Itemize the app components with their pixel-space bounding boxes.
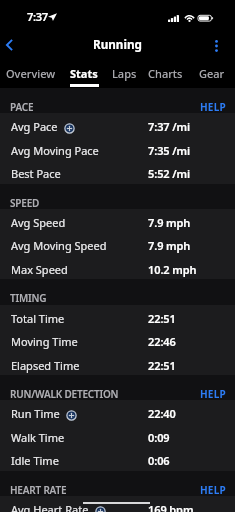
staticText: Running bbox=[93, 36, 142, 52]
staticText: 22:40 bbox=[148, 406, 176, 421]
staticText: Idle Time bbox=[11, 453, 59, 468]
staticText: 7.9 mph bbox=[148, 215, 191, 230]
button[interactable]: Run Time bbox=[0, 400, 235, 425]
button[interactable]: Avg Moving Pace bbox=[0, 137, 235, 162]
staticText: Avg Moving Pace bbox=[11, 143, 99, 158]
button[interactable]: Stats bbox=[58, 66, 110, 87]
staticText: 22:51 bbox=[148, 358, 176, 373]
staticText: 10.2 mph bbox=[148, 262, 197, 277]
staticText: RUN/WALK DETECTION bbox=[10, 387, 119, 401]
button[interactable]: Moving Time bbox=[0, 328, 235, 353]
button[interactable]: More options bbox=[206, 28, 228, 54]
button[interactable]: Max Speed bbox=[0, 256, 235, 281]
button[interactable]: Elapsed Time bbox=[0, 352, 235, 377]
staticText: 7.9 mph bbox=[148, 238, 191, 253]
staticText: 22:46 bbox=[148, 334, 176, 349]
staticText: Elapsed Time bbox=[11, 358, 80, 373]
button[interactable]: HELP bbox=[200, 100, 226, 114]
staticText: 0:06 bbox=[148, 453, 170, 468]
staticText: Best Pace bbox=[11, 166, 61, 181]
staticText: Laps bbox=[112, 66, 137, 81]
button[interactable]: Overview bbox=[5, 66, 57, 87]
button[interactable]: Avg Heart Rate bbox=[0, 496, 235, 512]
staticText: 169 bpm bbox=[148, 502, 194, 512]
button[interactable]: Best Pace bbox=[0, 160, 235, 185]
button[interactable]: Avg Pace bbox=[0, 113, 235, 138]
staticText: Charts bbox=[148, 66, 183, 81]
staticText: Walk Time bbox=[11, 430, 65, 445]
button[interactable]: Avg Moving Speed bbox=[0, 232, 235, 257]
button[interactable]: Laps bbox=[98, 66, 150, 87]
button[interactable]: Back bbox=[0, 28, 22, 54]
staticText: 7:35 /mi bbox=[148, 143, 191, 158]
button[interactable]: Gear bbox=[186, 66, 235, 87]
staticText: HEART RATE bbox=[10, 483, 67, 497]
staticText: 0:09 bbox=[148, 430, 170, 445]
button[interactable]: HELP bbox=[200, 483, 226, 497]
button[interactable]: Avg Speed bbox=[0, 209, 235, 234]
staticText: Avg Heart Rate bbox=[11, 502, 89, 512]
staticText: 7:37 bbox=[27, 9, 48, 24]
staticText: Avg Pace bbox=[11, 119, 58, 134]
staticText: Total Time bbox=[11, 311, 65, 326]
staticText: Max Speed bbox=[11, 262, 68, 277]
staticText: Overview bbox=[6, 66, 56, 81]
staticText: Stats bbox=[70, 66, 98, 81]
staticText: 22:51 bbox=[148, 311, 176, 326]
staticText: Run Time bbox=[11, 406, 60, 421]
button[interactable]: Total Time bbox=[0, 305, 235, 330]
staticText: Avg Moving Speed bbox=[11, 238, 107, 253]
button[interactable]: HELP bbox=[200, 387, 226, 401]
staticText: Avg Speed bbox=[11, 215, 66, 230]
staticText: Moving Time bbox=[11, 334, 78, 349]
staticText: SPEED bbox=[10, 196, 40, 210]
staticText: 7:37 /mi bbox=[148, 119, 191, 134]
button[interactable]: Walk Time bbox=[0, 424, 235, 449]
button[interactable]: Idle Time bbox=[0, 447, 235, 472]
staticText: TIMING bbox=[10, 291, 47, 305]
staticText: Gear bbox=[199, 66, 225, 81]
staticText: PACE bbox=[10, 100, 34, 114]
staticText: 5:52 /mi bbox=[148, 166, 191, 181]
button[interactable]: Charts bbox=[139, 66, 191, 87]
